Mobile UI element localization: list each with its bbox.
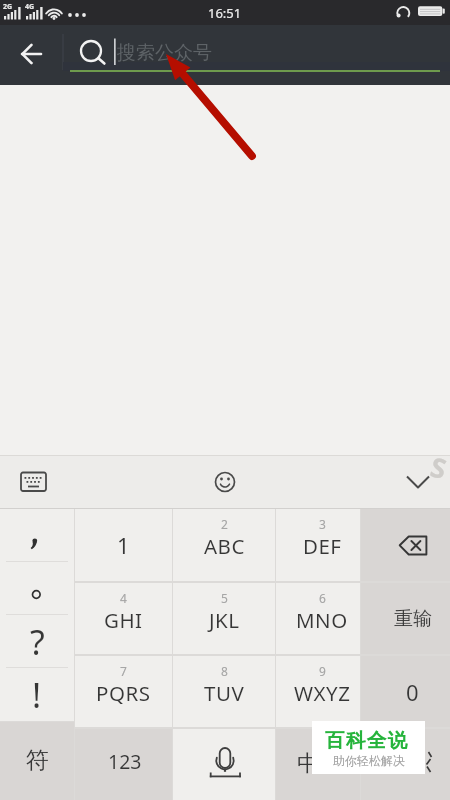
staticText: MNO (296, 606, 348, 634)
staticText: 2G (3, 2, 13, 12)
staticText: DEF (303, 532, 342, 560)
staticText: 重输 (394, 607, 432, 631)
button[interactable]: ? (0, 615, 74, 668)
staticText: 符 (26, 746, 49, 775)
staticText: ABC (204, 532, 245, 560)
button[interactable] (396, 465, 440, 501)
staticText: 搜索公众号 (117, 41, 212, 65)
button[interactable]: 百科全说 (312, 721, 425, 774)
button[interactable] (173, 729, 275, 800)
staticText: ? (30, 619, 45, 665)
staticText: 1 (117, 530, 130, 560)
staticText: 16:51 (208, 4, 242, 22)
button[interactable]: 6 (276, 583, 360, 654)
staticText: GHI (104, 606, 143, 634)
staticText: 百科全说 (325, 728, 409, 753)
staticText: PQRS (96, 679, 151, 707)
staticText: ! (32, 672, 42, 718)
staticText: 123 (108, 748, 142, 775)
button[interactable]: 8 (173, 656, 275, 727)
staticText: 4 (120, 590, 127, 606)
button[interactable]: 4 (75, 583, 172, 654)
button[interactable] (60, 35, 450, 83)
staticText: S (427, 448, 450, 487)
button[interactable] (361, 509, 450, 581)
staticText: TUV (204, 679, 245, 707)
button[interactable] (10, 43, 52, 79)
staticText: 3 (319, 516, 326, 532)
staticText: 0 (406, 677, 419, 707)
button[interactable]: 符 (0, 721, 74, 800)
staticText: 中 (297, 749, 320, 777)
button[interactable] (12, 465, 56, 501)
button[interactable]: 5 (173, 583, 275, 654)
button[interactable] (0, 509, 74, 562)
button[interactable]: 2 (173, 509, 275, 581)
button[interactable] (361, 729, 450, 800)
staticText: 8 (221, 663, 228, 679)
button[interactable]: 中 (276, 729, 360, 800)
staticText: JKL (209, 606, 240, 634)
button[interactable]: 0 (361, 656, 450, 727)
staticText: 7 (120, 663, 127, 679)
staticText: 4G (25, 2, 35, 12)
button[interactable]: ! (0, 668, 74, 721)
staticText: WXYZ (294, 679, 351, 707)
button[interactable]: 重输 (361, 583, 450, 654)
button[interactable] (0, 562, 74, 615)
button[interactable]: 123 (75, 729, 172, 800)
button[interactable]: 1 (75, 509, 172, 581)
staticText: 5 (221, 590, 228, 606)
staticText: 助你轻松解决 (333, 753, 405, 768)
staticText: 6 (319, 590, 326, 606)
button[interactable]: 7 (75, 656, 172, 727)
button[interactable] (203, 465, 247, 501)
staticText: 9 (319, 663, 326, 679)
staticText: 2 (221, 516, 228, 532)
button[interactable]: 9 (276, 656, 360, 727)
button[interactable]: 3 (276, 509, 360, 581)
